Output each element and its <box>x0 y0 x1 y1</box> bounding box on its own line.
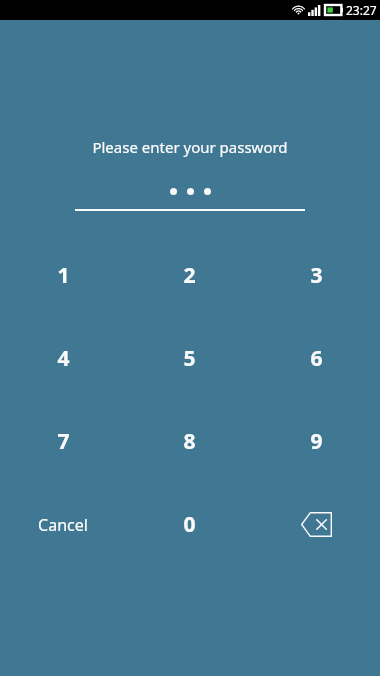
staticText: Cancel <box>38 514 88 536</box>
staticText: 0 <box>183 510 196 539</box>
staticText: 3 <box>310 261 323 290</box>
staticText: Please enter your password <box>92 137 288 157</box>
staticText: 7 <box>57 427 70 456</box>
button[interactable]: 4 <box>0 317 126 400</box>
staticText: 4 <box>57 344 70 373</box>
button[interactable]: 9 <box>253 400 380 483</box>
button[interactable]: 1 <box>0 234 126 317</box>
button[interactable]: Backspace <box>253 483 380 566</box>
staticText: 8 <box>183 427 196 456</box>
button[interactable]: Cancel <box>0 483 126 566</box>
staticText: 9 <box>310 427 323 456</box>
staticText: 2 <box>183 261 196 290</box>
staticText: 6 <box>310 344 323 373</box>
button[interactable]: 6 <box>253 317 380 400</box>
button[interactable]: 3 <box>253 234 380 317</box>
button[interactable]: 7 <box>0 400 126 483</box>
staticText: 5 <box>183 344 196 373</box>
button[interactable]: 0 <box>126 483 253 566</box>
button[interactable]: 8 <box>126 400 253 483</box>
staticText: 23:27 <box>346 2 377 18</box>
staticText: 1 <box>57 261 70 290</box>
button[interactable]: 2 <box>126 234 253 317</box>
button[interactable]: 5 <box>126 317 253 400</box>
